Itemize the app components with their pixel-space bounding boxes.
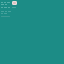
button[interactable] (0, 11, 64, 14)
button[interactable] (0, 4, 11, 5)
button[interactable] (0, 1, 11, 5)
button[interactable] (0, 2, 11, 3)
button[interactable]: Profile badge (12, 1, 17, 5)
button[interactable] (0, 16, 64, 17)
button[interactable] (0, 7, 64, 8)
button[interactable] (0, 13, 64, 14)
button[interactable] (0, 11, 64, 12)
button[interactable] (0, 7, 11, 8)
